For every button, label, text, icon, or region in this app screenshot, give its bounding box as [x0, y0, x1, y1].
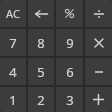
button[interactable]: Plus	[85, 87, 112, 112]
staticText: 1	[9, 91, 17, 109]
staticText: 7	[9, 34, 17, 52]
button[interactable]: 2	[28, 87, 54, 112]
button[interactable]: Divide	[85, 0, 112, 27]
staticText: 6	[66, 63, 74, 81]
button[interactable]: 5	[28, 58, 54, 85]
button[interactable]: Percent	[56, 0, 83, 27]
button[interactable]: 4	[0, 58, 26, 85]
button[interactable]: 9	[56, 29, 83, 56]
button[interactable]: AC	[0, 0, 26, 27]
button[interactable]: Minus	[85, 58, 112, 85]
staticText: AC	[6, 6, 20, 21]
staticText: 4	[9, 63, 17, 81]
button[interactable]: 1	[0, 87, 26, 112]
staticText: 3	[66, 91, 74, 109]
button[interactable]: 3	[56, 87, 83, 112]
button[interactable]: 8	[28, 29, 54, 56]
staticText: 9	[66, 34, 74, 52]
button[interactable]: Backspace	[28, 0, 54, 27]
button[interactable]: 7	[0, 29, 26, 56]
staticText: 8	[37, 34, 45, 52]
staticText: 5	[37, 63, 45, 81]
button[interactable]: Multiply	[85, 29, 112, 56]
button[interactable]: 6	[56, 58, 83, 85]
staticText: 2	[37, 91, 45, 109]
